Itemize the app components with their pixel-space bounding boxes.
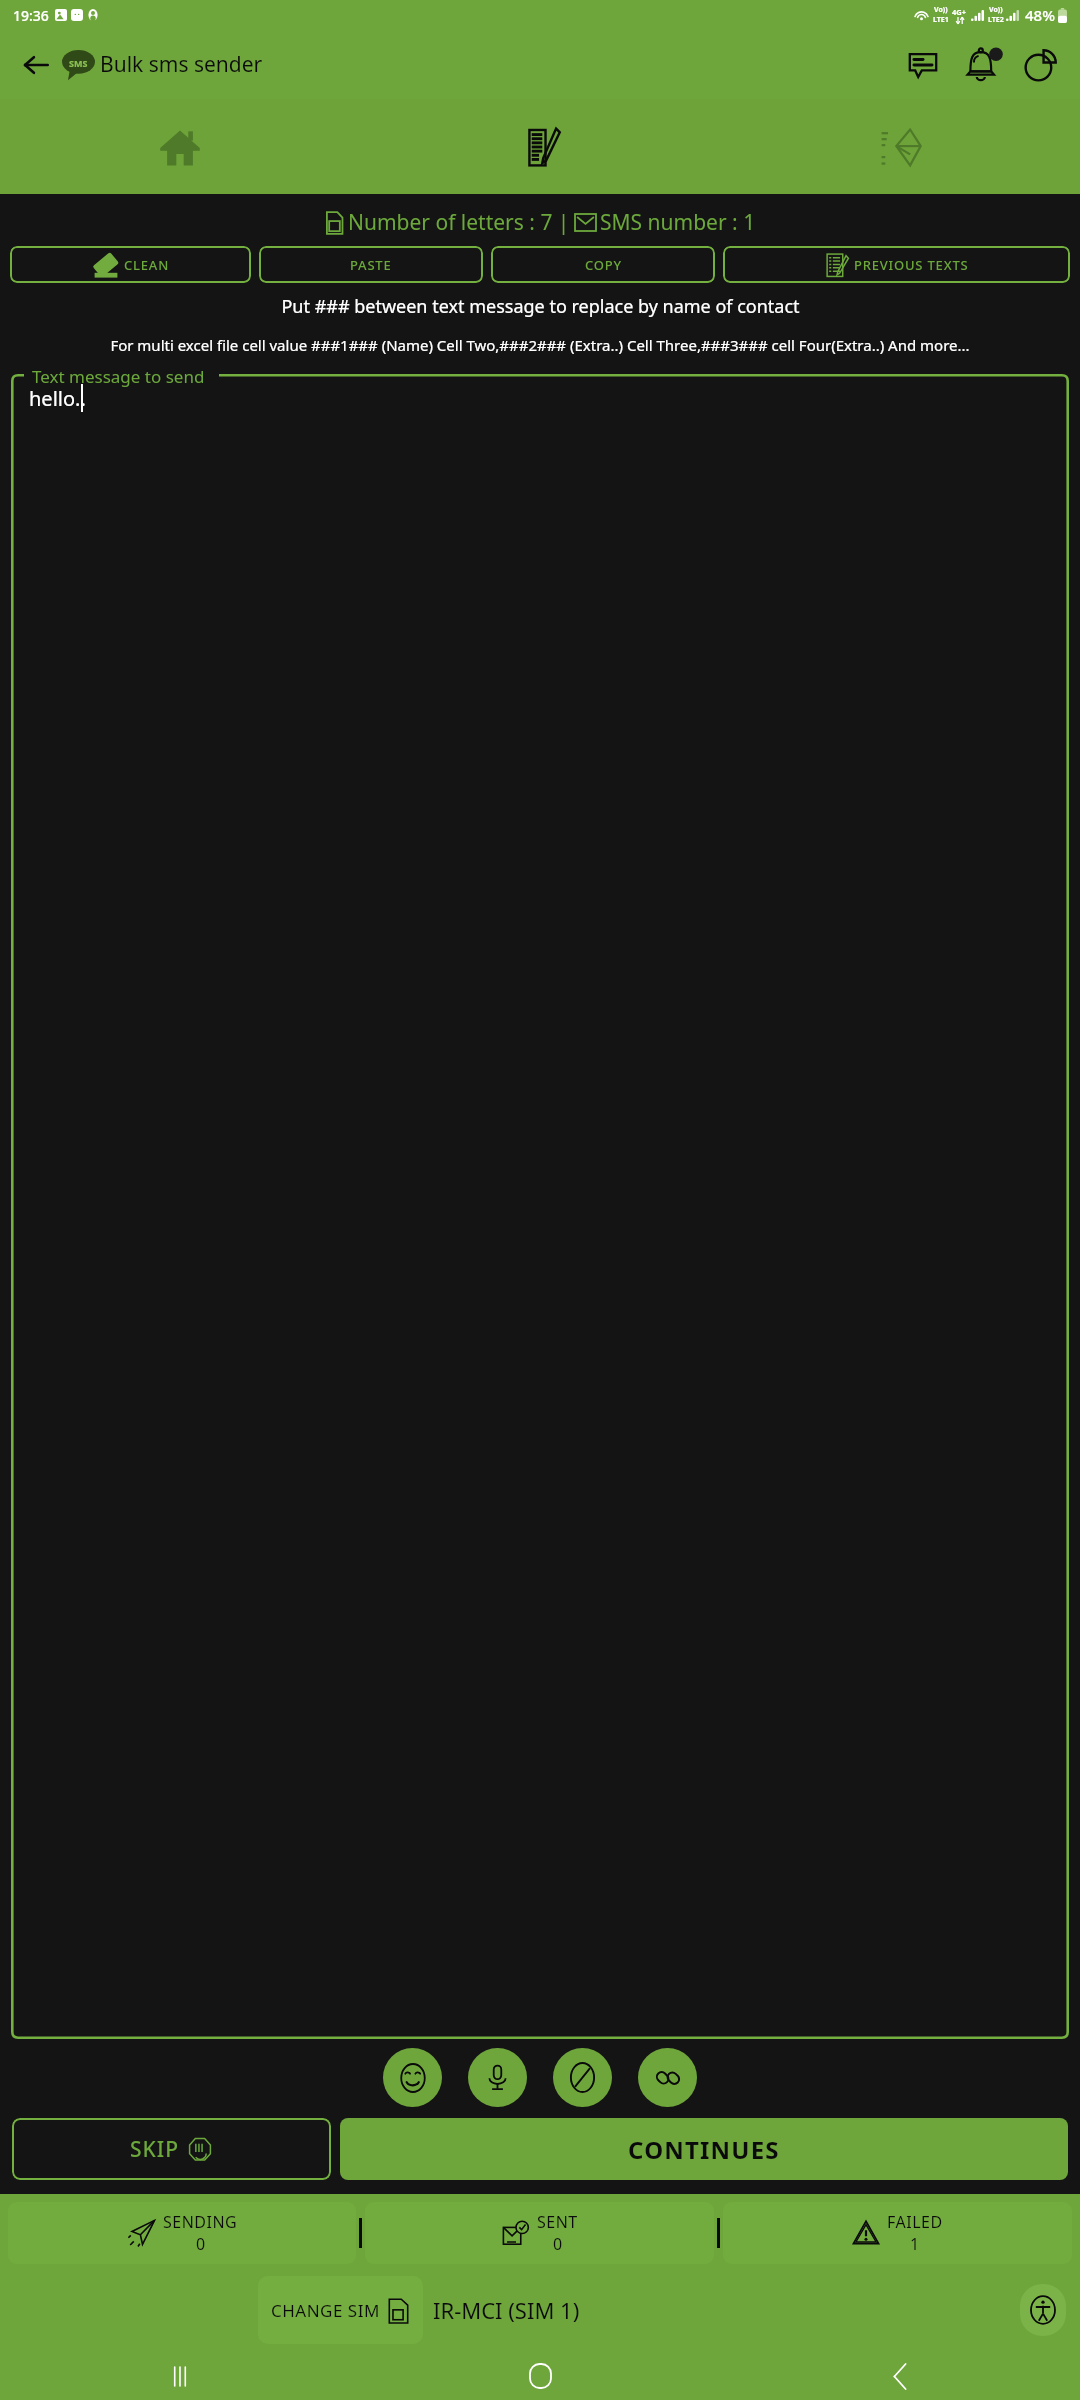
staticText: Put ### between text message to replace … [281, 294, 800, 319]
staticText: IR-MCI (SIM 1) [433, 2295, 580, 2325]
staticText: Text message to send [32, 365, 205, 388]
staticText: PREVIOUS TEXTS [854, 256, 969, 274]
staticText: SMS number : 1 [600, 208, 756, 237]
staticText: 1 [910, 2233, 920, 2255]
button[interactable]: Home [360, 2352, 720, 2400]
button[interactable]: hello.. [11, 374, 1069, 2039]
button[interactable]: Recents [0, 2352, 360, 2400]
button[interactable]: Send [720, 99, 1080, 194]
button[interactable]: Compose [360, 99, 720, 194]
button[interactable]: SENT [365, 2202, 714, 2264]
staticText: Vo)) [934, 5, 948, 15]
staticText: For multi excel file cell value ###1### … [110, 335, 970, 355]
button[interactable]: Add link [638, 2048, 697, 2107]
staticText: 4G+ [952, 7, 967, 17]
button[interactable]: SKIP [12, 2118, 331, 2180]
staticText: Number of letters : 7 | [348, 208, 575, 237]
staticText: LTE1 [933, 15, 949, 25]
button[interactable]: Notifications [960, 41, 1008, 89]
button[interactable]: Back [720, 2352, 1080, 2400]
staticText: Bulk sms sender [100, 50, 263, 79]
button[interactable]: PREVIOUS TEXTS [723, 246, 1070, 283]
staticText: SENDING [163, 2211, 238, 2233]
button[interactable]: CLEAN [10, 246, 251, 283]
staticText: 48% [1025, 5, 1055, 25]
staticText: FAILED [887, 2211, 943, 2233]
staticText: 0 [196, 2233, 206, 2255]
button[interactable]: Accessibility [1020, 2284, 1066, 2336]
staticText: LTE2 [988, 15, 1004, 25]
staticText: CONTINUES [628, 2133, 780, 2166]
button[interactable]: Block [553, 2048, 612, 2107]
staticText: COPY [585, 256, 622, 274]
button[interactable]: Messages [900, 42, 946, 88]
button[interactable]: SENDING [8, 2202, 356, 2264]
staticText: CHANGE SIM [271, 2299, 380, 2322]
staticText: 0 [553, 2233, 563, 2255]
button[interactable]: CONTINUES [340, 2118, 1068, 2180]
button[interactable]: PASTE [259, 246, 483, 283]
staticText: 19:36 [13, 6, 49, 25]
staticText: PASTE [350, 256, 392, 274]
staticText: SENT [537, 2211, 578, 2233]
staticText: SMS [69, 57, 88, 69]
button[interactable]: Emoji [383, 2048, 442, 2107]
button[interactable]: Statistics [1018, 42, 1064, 88]
staticText: hello.. [29, 385, 86, 412]
staticText: SKIP [130, 2135, 180, 2164]
button[interactable]: FAILED [723, 2202, 1072, 2264]
button[interactable]: COPY [491, 246, 715, 283]
staticText: Vo)) [989, 5, 1003, 15]
button[interactable]: CHANGE SIM [258, 2276, 423, 2344]
button[interactable]: Voice input [468, 2048, 527, 2107]
button[interactable]: Back [14, 43, 58, 87]
staticText: CLEAN [124, 256, 170, 274]
button[interactable]: Home [0, 99, 360, 194]
